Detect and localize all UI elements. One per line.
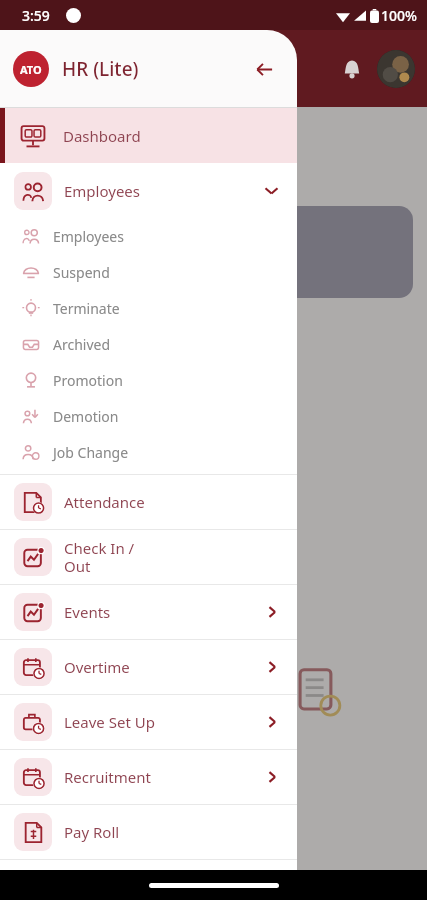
button[interactable]: Archived	[0, 326, 297, 362]
staticText: Demotion	[53, 407, 119, 426]
button[interactable]: Pay Roll	[0, 805, 297, 859]
button[interactable]: Dashboard	[0, 108, 297, 163]
staticText: Total Number of Employees	[30, 243, 212, 262]
staticText: Check In / Out	[64, 538, 135, 577]
staticText: Attendance	[64, 492, 145, 512]
staticText: Events	[64, 602, 111, 622]
staticText: Employees on types of leave	[18, 169, 204, 188]
staticText: Leave	[18, 524, 54, 542]
button[interactable]: Suspend	[0, 254, 297, 290]
staticText: Overtime	[64, 657, 130, 677]
staticText: Suspend	[53, 263, 110, 282]
button[interactable]: Promotion	[0, 362, 297, 398]
staticText: ATO	[20, 62, 42, 77]
staticText: Leave Set Up	[64, 712, 155, 732]
button[interactable]: Terminate	[0, 290, 297, 326]
button[interactable]: Overtime	[0, 640, 297, 694]
staticText: Promotion	[53, 371, 123, 390]
button[interactable]: Profile	[377, 50, 415, 88]
button[interactable]: Recruitment	[0, 750, 297, 804]
button[interactable]: Check In / Out	[0, 530, 297, 584]
button[interactable]: Employees	[0, 163, 297, 218]
staticText: 3:59	[22, 6, 50, 25]
button[interactable]: Attendance	[0, 475, 297, 529]
button[interactable]: Employees	[0, 218, 297, 254]
staticText: Version 0.0.04	[106, 872, 192, 890]
staticText: Absent	[18, 437, 61, 455]
staticText: 100%	[381, 6, 417, 25]
staticText: Dashboard	[63, 126, 141, 146]
button[interactable]: Close drawer	[244, 49, 284, 89]
button[interactable]: Events	[0, 585, 297, 639]
button[interactable]: Demotion	[0, 398, 297, 434]
staticText: Job Change	[53, 443, 129, 462]
staticText: Pay Roll	[64, 822, 120, 842]
button[interactable]: Leave Set Up	[0, 695, 297, 749]
staticText: Archived	[53, 335, 111, 354]
staticText: Terminate	[53, 299, 120, 318]
staticText: Employees	[64, 181, 140, 201]
staticText: Present	[18, 408, 65, 426]
button[interactable]: Job Change	[0, 434, 297, 470]
button[interactable]: Notifications	[335, 52, 369, 86]
staticText: Vacation	[18, 466, 71, 484]
staticText: Employees	[53, 227, 124, 246]
staticText: HR (Lite)	[62, 56, 139, 82]
staticText: Late	[18, 495, 45, 513]
staticText: Recruitment	[64, 767, 151, 787]
